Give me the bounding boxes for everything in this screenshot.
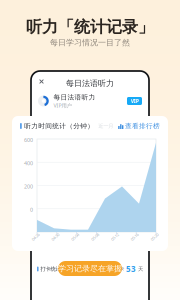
staticText: 每日法语听力 <box>66 78 114 88</box>
staticText: 查看排行榜 <box>125 122 160 130</box>
staticText: 04-30 <box>51 234 60 240</box>
staticText: 04-26 <box>31 234 40 240</box>
staticText: 打卡 <box>114 266 124 272</box>
staticText: 05-12 <box>110 234 119 240</box>
staticText: 每日学习情况一目了然 <box>50 38 130 47</box>
staticText: 0 <box>30 206 33 213</box>
staticText: 400 <box>24 160 33 167</box>
staticText: 近一月 <box>98 123 113 129</box>
staticText: 学习记录尽在掌握 <box>58 264 122 273</box>
staticText: 打卡统计 <box>41 266 61 272</box>
staticText: 听力时间统计（分钟） <box>24 122 94 130</box>
button[interactable]: VIP <box>127 97 142 105</box>
staticText: VIP用户 <box>53 102 71 109</box>
staticText: 05-08 <box>90 234 99 240</box>
staticText: 每日法语听力 <box>53 93 95 101</box>
staticText: 05-16 <box>130 234 139 240</box>
staticText: 听力「统计记录」 <box>26 17 154 37</box>
staticText: 600 <box>24 136 33 143</box>
staticText: 天 <box>138 266 143 272</box>
button[interactable]: 学习记录尽在掌握 <box>58 261 122 276</box>
staticText: 53 <box>124 264 138 274</box>
staticText: 05-04 <box>71 234 80 240</box>
staticText: VIP <box>130 97 138 105</box>
staticText: 200 <box>24 183 33 190</box>
staticText: 05-20 <box>150 234 159 240</box>
button[interactable]: 关闭 <box>36 76 47 87</box>
button[interactable]: 查看排行榜 <box>118 122 160 130</box>
